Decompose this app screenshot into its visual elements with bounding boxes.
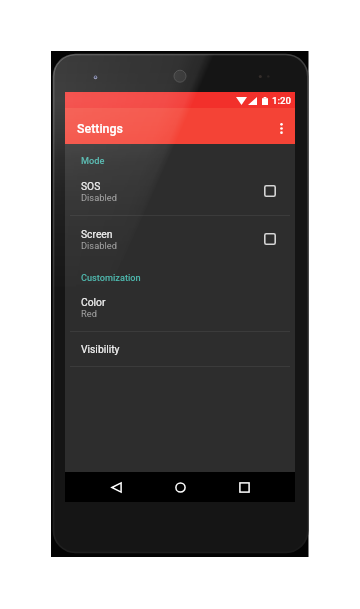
button[interactable]: Recent apps [225, 472, 263, 502]
staticText: Mode [81, 155, 105, 166]
button[interactable]: Home [161, 472, 199, 502]
staticText: Disabled [81, 240, 117, 251]
staticText: Screen [81, 228, 113, 240]
staticText: Visibility [81, 343, 120, 355]
staticText: Disabled [81, 192, 117, 203]
button[interactable]: Visibility [65, 331, 295, 366]
staticText: Customization [81, 272, 141, 283]
button[interactable]: SOS [65, 167, 295, 215]
staticText: SOS [81, 180, 101, 192]
staticText: 1:20 [272, 95, 292, 106]
button[interactable]: Screen [65, 215, 295, 263]
staticText: Color [81, 296, 106, 308]
button[interactable]: Back [97, 472, 135, 502]
button[interactable]: More options [267, 110, 295, 146]
button[interactable]: Color [65, 284, 295, 331]
staticText: Red [81, 308, 97, 319]
staticText: Settings [77, 121, 123, 136]
